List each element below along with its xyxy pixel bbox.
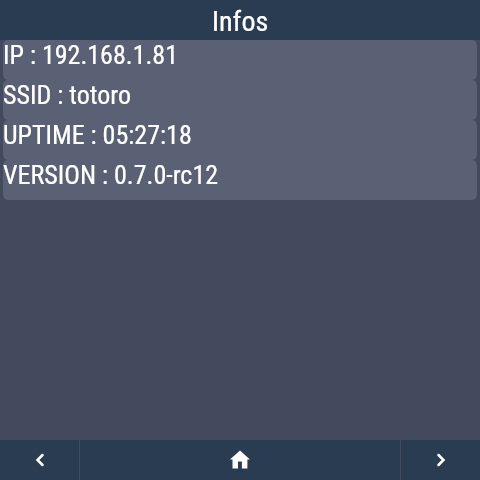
- button[interactable]: IP : 192.168.1.81: [3, 40, 477, 80]
- button[interactable]: Previous: [0, 440, 79, 480]
- button[interactable]: SSID : totoro: [3, 80, 477, 120]
- button[interactable]: Next: [401, 440, 480, 480]
- button[interactable]: VERSION : 0.7.0-rc12: [3, 160, 477, 200]
- button[interactable]: Home: [80, 440, 400, 480]
- staticText: SSID : totoro: [3, 80, 132, 110]
- staticText: IP : 192.168.1.81: [3, 40, 178, 70]
- button[interactable]: UPTIME : 05:27:18: [3, 120, 477, 160]
- staticText: VERSION : 0.7.0-rc12: [3, 160, 219, 190]
- staticText: Infos: [212, 5, 269, 38]
- staticText: UPTIME : 05:27:18: [3, 120, 192, 150]
